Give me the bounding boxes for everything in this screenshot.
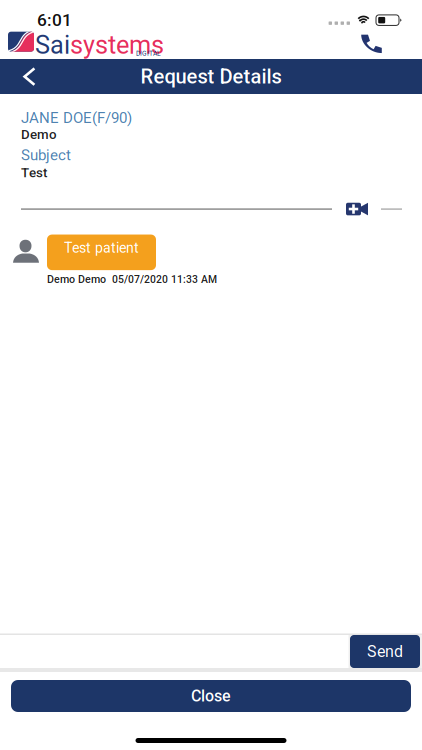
staticText: Demo Demo xyxy=(47,273,106,286)
staticText: Close xyxy=(191,687,231,705)
staticText: JANE DOE(F/90) xyxy=(21,109,132,127)
staticText: Demo xyxy=(21,127,57,142)
staticText: 6:01 xyxy=(37,10,72,30)
staticText: Sai xyxy=(35,30,70,60)
button[interactable]: Close xyxy=(11,680,411,712)
staticText: Subject xyxy=(21,146,71,164)
button[interactable]: Send xyxy=(350,635,420,668)
staticText: Test xyxy=(21,165,47,180)
staticText: Test patient xyxy=(64,240,139,256)
staticText: DIGITAL xyxy=(136,50,161,57)
staticText: Request Details xyxy=(140,65,281,88)
button[interactable]: Back xyxy=(0,59,48,94)
staticText: systems xyxy=(70,30,164,60)
button[interactable]: Call xyxy=(354,32,389,56)
staticText: Send xyxy=(367,642,403,661)
staticText: 05/07/2020 11:33 AM xyxy=(112,273,217,285)
button[interactable]: Start video call xyxy=(346,203,368,215)
